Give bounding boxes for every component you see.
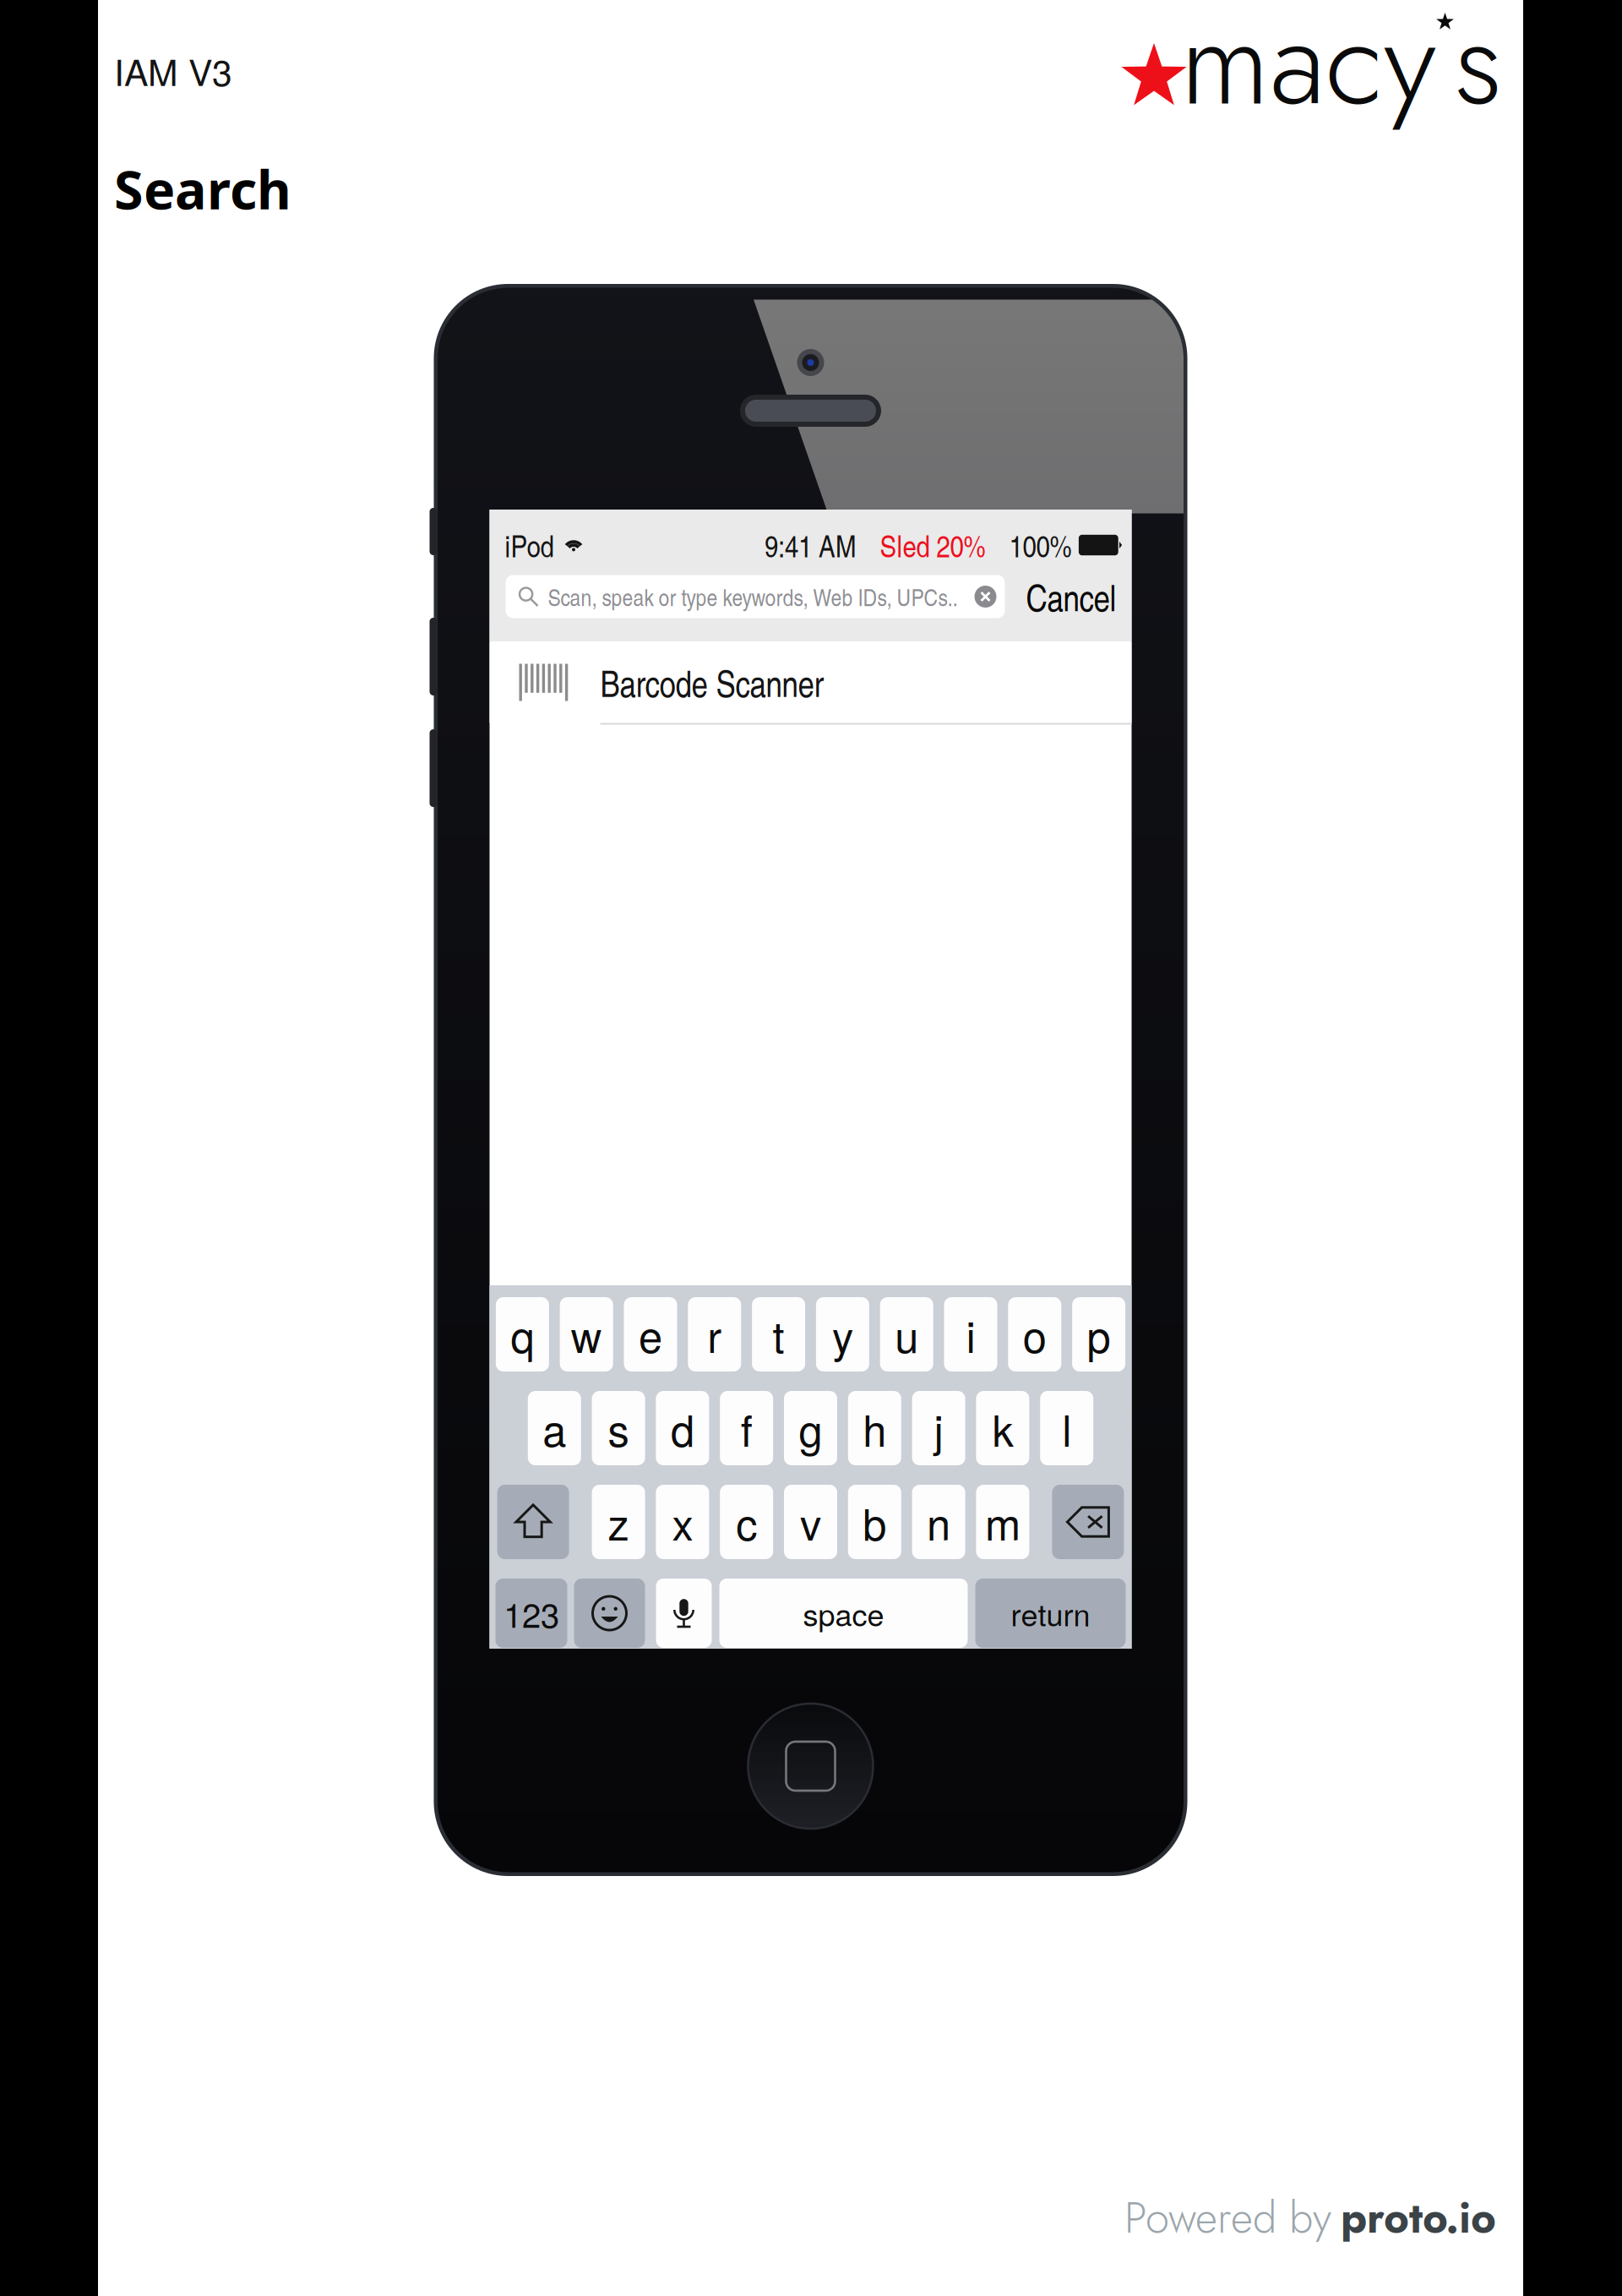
staticText: j — [934, 1397, 943, 1459]
staticText: Scan, speak or type keywords, Web IDs, U… — [548, 580, 958, 613]
staticText: 123 — [503, 1589, 559, 1637]
button[interactable]: n — [912, 1485, 965, 1559]
staticText: return — [1011, 1591, 1090, 1635]
staticText: l — [1062, 1397, 1071, 1459]
staticText: p — [1087, 1304, 1111, 1365]
button[interactable]: Barcode Scanner — [490, 642, 1132, 723]
button[interactable]: x — [656, 1485, 709, 1559]
staticText: m — [985, 1491, 1020, 1553]
button[interactable]: Dictate — [656, 1579, 712, 1648]
button[interactable]: r — [688, 1297, 741, 1372]
button[interactable]: d — [656, 1391, 709, 1465]
staticText: s — [608, 1397, 629, 1459]
staticText: iPod — [505, 524, 554, 566]
staticText: a — [543, 1397, 566, 1459]
button[interactable]: u — [880, 1297, 933, 1372]
button[interactable]: m — [976, 1485, 1029, 1559]
button[interactable]: j — [912, 1391, 965, 1465]
staticText: h — [863, 1397, 886, 1459]
button[interactable]: w — [560, 1297, 613, 1372]
button[interactable]: return — [975, 1579, 1126, 1648]
button[interactable]: l — [1040, 1391, 1093, 1465]
button[interactable]: k — [976, 1391, 1029, 1465]
staticText: t — [773, 1304, 784, 1365]
button[interactable]: z — [592, 1485, 645, 1559]
staticText: macy — [1180, 0, 1436, 149]
button[interactable]: Cancel — [1026, 572, 1116, 621]
staticText: u — [895, 1304, 918, 1365]
staticText: Cancel — [1026, 572, 1116, 621]
staticText: space — [803, 1591, 884, 1635]
button[interactable]: e — [624, 1297, 677, 1372]
button[interactable]: p — [1072, 1297, 1125, 1372]
staticText: v — [800, 1491, 821, 1553]
staticText: i — [966, 1304, 975, 1365]
staticText: IAM V3 — [114, 45, 232, 96]
staticText: c — [736, 1491, 757, 1553]
staticText: z — [608, 1491, 629, 1553]
staticText: q — [511, 1304, 534, 1365]
button[interactable]: o — [1008, 1297, 1061, 1372]
button[interactable]: space — [719, 1579, 968, 1648]
button[interactable]: y — [816, 1297, 869, 1372]
button[interactable]: v — [784, 1485, 837, 1559]
button[interactable]: g — [784, 1391, 837, 1465]
button[interactable]: a — [528, 1391, 581, 1465]
button[interactable]: Shift — [497, 1485, 569, 1559]
staticText: e — [639, 1304, 662, 1365]
staticText: s — [1454, 0, 1502, 149]
staticText: f — [741, 1397, 752, 1459]
button[interactable]: b — [848, 1485, 901, 1559]
staticText: n — [927, 1491, 950, 1553]
staticText: k — [992, 1397, 1013, 1459]
staticText: Sled — [880, 524, 930, 566]
staticText: b — [863, 1491, 886, 1553]
button[interactable]: Delete — [1052, 1485, 1124, 1559]
button[interactable]: s — [592, 1391, 645, 1465]
staticText: x — [672, 1491, 693, 1553]
button[interactable]: c — [720, 1485, 773, 1559]
button[interactable]: f — [720, 1391, 773, 1465]
button[interactable]: q — [496, 1297, 549, 1372]
staticText: r — [707, 1304, 722, 1365]
staticText: 20% — [936, 524, 985, 566]
staticText: Search — [114, 153, 291, 225]
button[interactable]: Emoji — [574, 1579, 645, 1648]
staticText: 9:41 AM — [765, 524, 857, 566]
button[interactable]: i — [944, 1297, 997, 1372]
button[interactable]: t — [752, 1297, 805, 1372]
button[interactable]: 123 — [495, 1579, 567, 1648]
staticText: Powered by — [1124, 2187, 1331, 2249]
staticText: proto.io — [1341, 2187, 1496, 2249]
staticText: 100% — [1009, 524, 1072, 566]
staticText: w — [571, 1304, 602, 1365]
staticText: y — [832, 1304, 853, 1365]
staticText: d — [671, 1397, 694, 1459]
staticText: o — [1023, 1304, 1047, 1365]
button[interactable]: h — [848, 1391, 901, 1465]
staticText: g — [799, 1397, 822, 1459]
staticText: Barcode Scanner — [600, 658, 824, 707]
